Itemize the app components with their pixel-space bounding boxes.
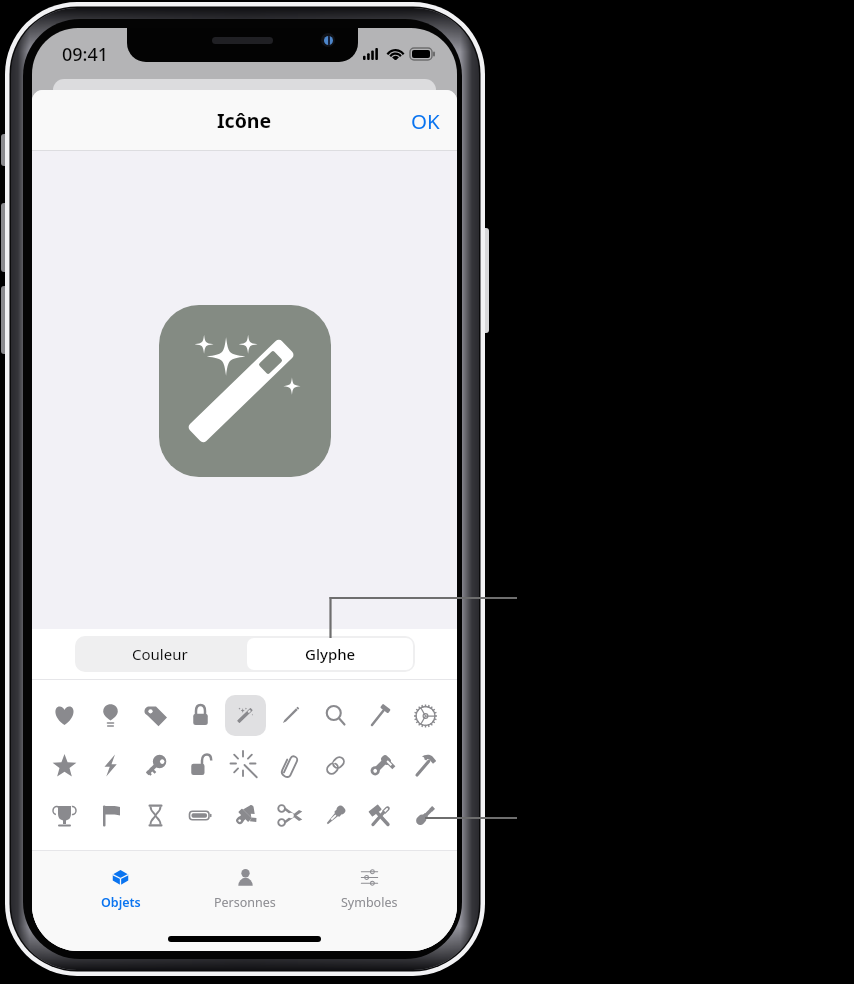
staticText: Personnes xyxy=(214,894,276,911)
staticText: Symboles xyxy=(341,894,398,911)
button[interactable]: heart xyxy=(41,692,87,738)
button[interactable]: pen xyxy=(268,692,313,738)
button[interactable]: lock xyxy=(178,692,223,738)
button[interactable]: paintbrush xyxy=(223,792,268,838)
button[interactable]: Objets xyxy=(58,869,183,911)
button[interactable]: flag xyxy=(87,792,133,838)
button[interactable]: screwdriver xyxy=(403,792,448,838)
button[interactable]: tag xyxy=(133,692,178,738)
button[interactable]: eyedrop xyxy=(313,792,358,838)
staticText: 09:41 xyxy=(62,42,109,67)
button[interactable]: hammer xyxy=(403,742,448,788)
button[interactable]: link xyxy=(313,742,358,788)
button[interactable]: bulb xyxy=(87,692,133,738)
button[interactable]: tools xyxy=(358,792,403,838)
button[interactable]: unlock xyxy=(178,742,223,788)
staticText: Objets xyxy=(101,894,141,911)
button[interactable]: gear xyxy=(403,692,448,738)
staticText: Couleur xyxy=(132,644,188,664)
button[interactable]: wrench xyxy=(358,742,403,788)
button[interactable]: scissors xyxy=(268,792,313,838)
button[interactable]: hourglass xyxy=(133,792,178,838)
staticText: Icône xyxy=(217,107,272,134)
button[interactable]: battery xyxy=(178,792,223,838)
button[interactable]: sparkle xyxy=(223,742,268,788)
button[interactable]: Symboles xyxy=(307,869,431,911)
button[interactable]: trophy xyxy=(41,792,87,838)
button[interactable]: Glyphe xyxy=(247,638,413,670)
button[interactable]: bolt xyxy=(87,742,133,788)
button[interactable]: search xyxy=(313,692,358,738)
button[interactable]: star xyxy=(41,742,87,788)
button[interactable]: key xyxy=(133,742,178,788)
button[interactable]: Couleur xyxy=(75,636,245,672)
button[interactable]: Personnes xyxy=(183,869,307,911)
button[interactable]: wand xyxy=(223,692,268,738)
button[interactable]: hammer2 xyxy=(358,692,403,738)
staticText: OK xyxy=(411,107,440,135)
button[interactable]: OK xyxy=(394,97,457,145)
staticText: Glyphe xyxy=(305,644,356,664)
button[interactable]: clip xyxy=(268,742,313,788)
